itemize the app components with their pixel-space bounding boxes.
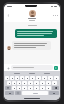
button[interactable]: Key [36, 76, 41, 80]
button[interactable]: Key [22, 81, 27, 85]
button[interactable] [12, 41, 51, 50]
button[interactable]: Key [15, 76, 19, 80]
button[interactable]: Key [12, 86, 16, 90]
button[interactable]: Key [34, 86, 39, 90]
button[interactable]: Key [25, 76, 29, 80]
button[interactable]: Key [46, 81, 51, 85]
button[interactable]: Key [7, 81, 11, 85]
button[interactable]: Add attachment [6, 66, 10, 70]
button[interactable]: Key [42, 76, 47, 80]
button[interactable]: Key [28, 86, 33, 90]
button[interactable]: Key [28, 81, 33, 85]
button[interactable]: Backspace [52, 86, 59, 90]
button[interactable]: Key [10, 76, 14, 80]
button[interactable] [28, 10, 36, 21]
button[interactable] [29, 73, 35, 74]
button[interactable]: Key [34, 81, 39, 85]
button[interactable]: Key [17, 86, 21, 90]
button[interactable]: More options [53, 15, 58, 16]
button[interactable]: Key [46, 86, 51, 90]
button[interactable] [14, 73, 20, 74]
button[interactable]: Back [6, 13, 11, 18]
button[interactable]: Key [40, 81, 45, 85]
button[interactable]: Key [5, 76, 9, 80]
button[interactable]: Space [22, 91, 48, 95]
button[interactable]: Key [12, 81, 16, 85]
button[interactable]: Key [17, 81, 21, 85]
button[interactable]: Return [49, 91, 59, 95]
button[interactable] [11, 65, 53, 70]
button[interactable]: Key [22, 86, 27, 90]
button[interactable]: Key [20, 76, 24, 80]
button[interactable]: Key [52, 81, 57, 85]
button[interactable] [44, 73, 50, 74]
button[interactable]: Key [40, 86, 45, 90]
button[interactable]: Send [54, 66, 58, 70]
button[interactable]: Key [54, 76, 59, 80]
button[interactable]: Shift [5, 86, 11, 90]
button[interactable] [15, 29, 57, 38]
button[interactable]: Key [48, 76, 53, 80]
button[interactable]: Numbers [5, 91, 14, 95]
button[interactable]: Emoji [15, 91, 21, 95]
button[interactable]: Key [30, 76, 35, 80]
